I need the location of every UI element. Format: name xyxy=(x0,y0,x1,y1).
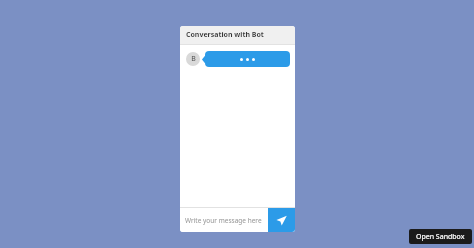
button[interactable]: Bot is typing xyxy=(205,51,290,67)
button[interactable]: Open Sandbox xyxy=(409,229,472,244)
button[interactable]: Send xyxy=(268,208,295,232)
staticText: Write your message here xyxy=(185,216,262,225)
staticText: Conversation with Bot xyxy=(186,30,264,40)
button[interactable]: Conversation with Bot xyxy=(180,26,295,44)
staticText: B xyxy=(191,54,196,64)
staticText: Open Sandbox xyxy=(416,232,465,242)
button[interactable]: Write your message here xyxy=(180,208,268,232)
